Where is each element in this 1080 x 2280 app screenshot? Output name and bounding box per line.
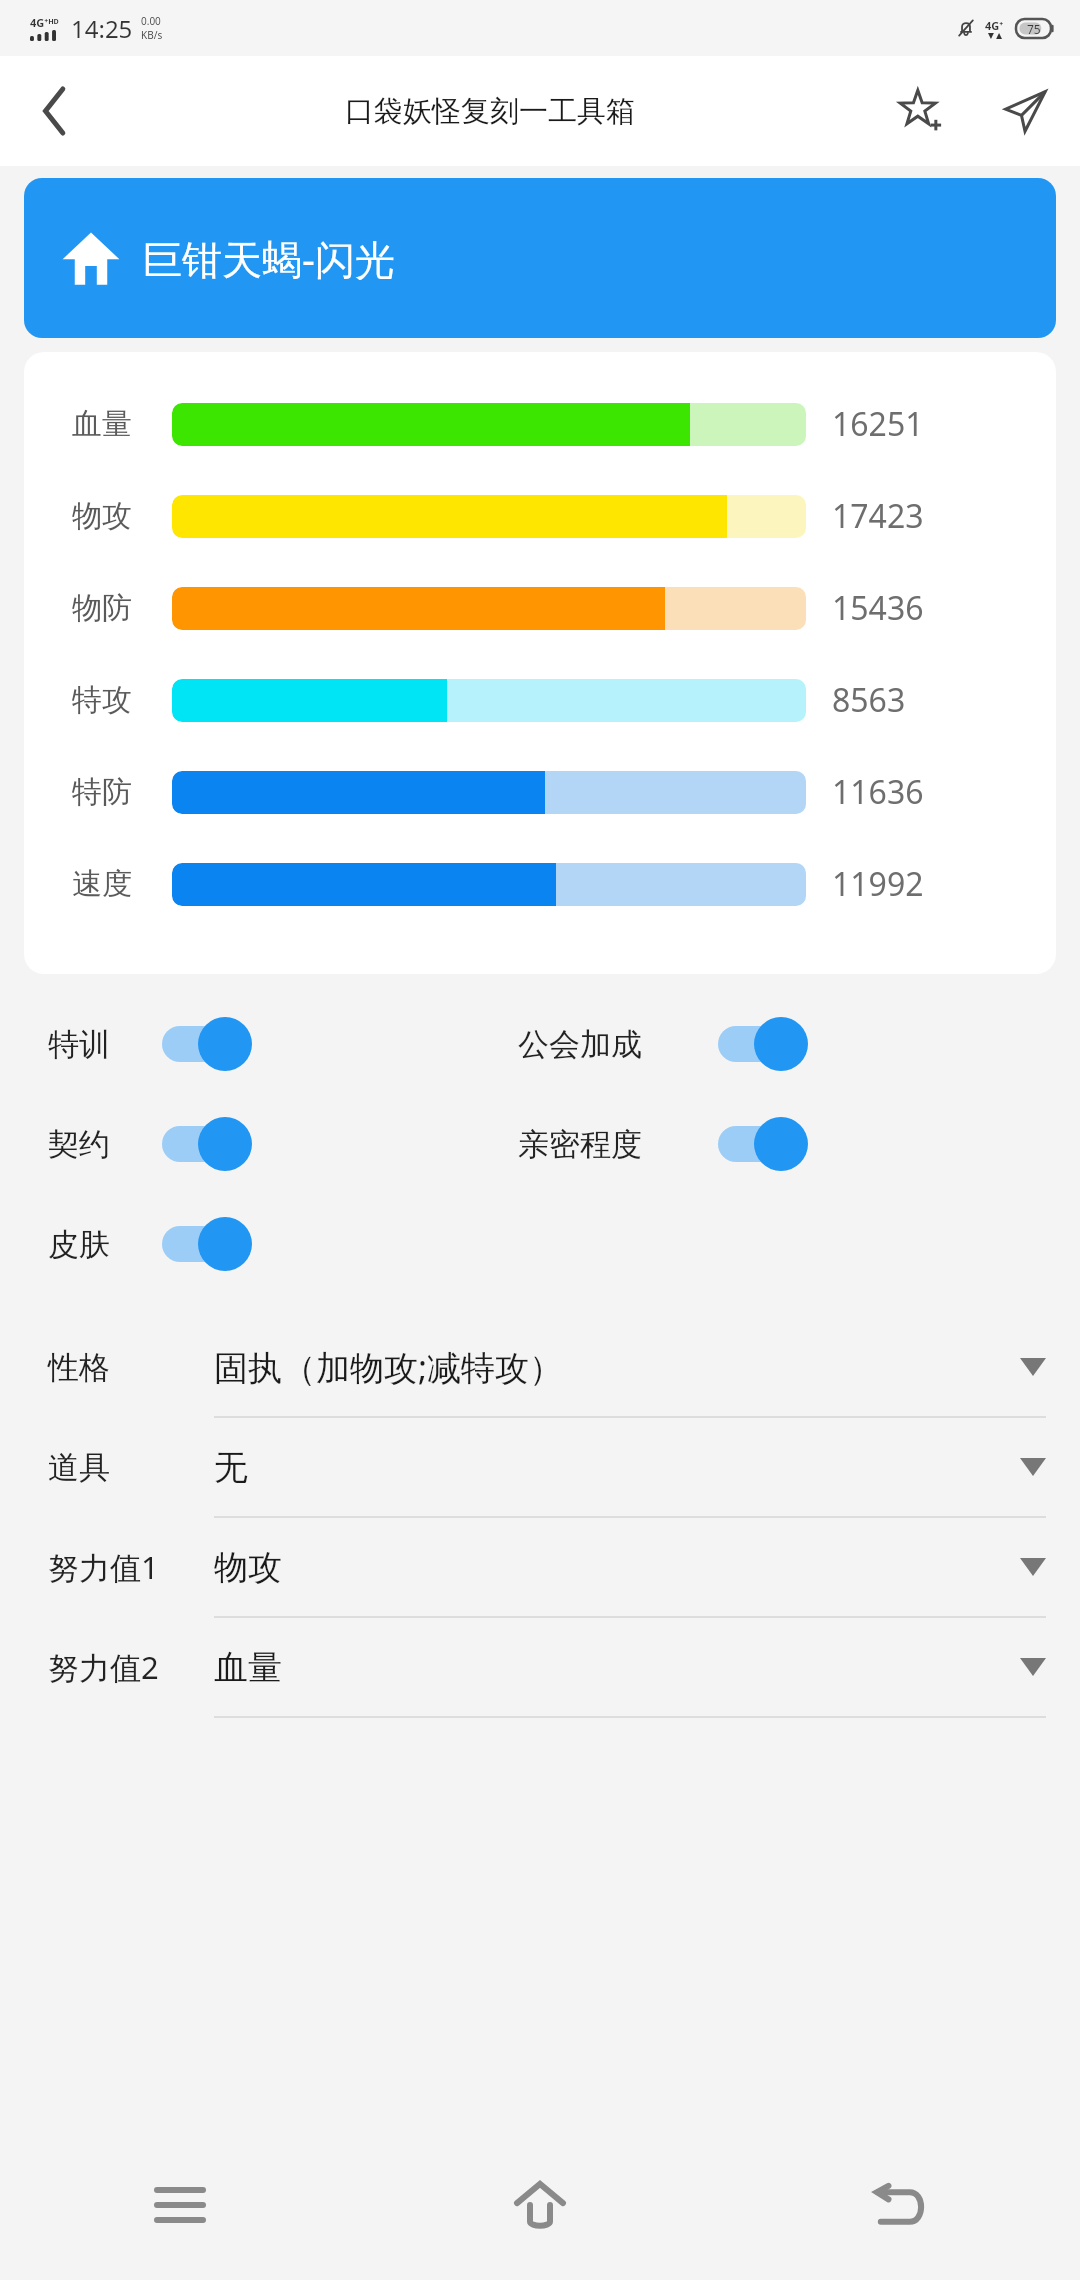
staticText: 75	[1027, 21, 1041, 37]
button[interactable]: 皮肤	[48, 1196, 254, 1292]
staticText: 特防	[72, 773, 132, 811]
staticText: 固执（加物攻;减特攻）	[214, 1344, 1020, 1390]
staticText: 特攻	[72, 681, 132, 719]
button[interactable]: 道具	[0, 1418, 1080, 1518]
staticText: 努力值1	[48, 1546, 159, 1588]
staticText: 特训	[48, 1025, 110, 1064]
button[interactable]: Add to favorites	[870, 56, 970, 166]
staticText: 15436	[832, 586, 924, 630]
button[interactable]: Recent apps	[115, 2140, 245, 2270]
staticText: 口袋妖怪复刻一工具箱	[345, 93, 635, 130]
staticText: 物攻	[72, 497, 132, 535]
staticText: 0.00	[141, 14, 161, 28]
staticText: 17423	[832, 494, 924, 538]
button[interactable]: 契约	[48, 1096, 254, 1192]
button[interactable]: 特训	[48, 996, 254, 1092]
button[interactable]: Share	[970, 56, 1080, 166]
staticText: 道具	[48, 1448, 110, 1487]
button[interactable]: 努力值2	[0, 1618, 1080, 1718]
staticText: 4G⁺	[985, 18, 1004, 33]
staticText: 契约	[48, 1125, 110, 1164]
button[interactable]: 性格	[0, 1318, 1080, 1418]
staticText: 无	[214, 1446, 1020, 1489]
staticText: 性格	[48, 1348, 110, 1387]
staticText: 努力值2	[48, 1646, 159, 1688]
button[interactable]: 巨钳天蝎-闪光	[24, 178, 1056, 338]
staticText: 皮肤	[48, 1225, 110, 1264]
staticText: 血量	[214, 1646, 1020, 1689]
staticText: 亲密程度	[518, 1125, 642, 1164]
button[interactable]: 公会加成	[518, 996, 810, 1092]
staticText: 4G⁺ᴴᴰ	[30, 15, 59, 30]
staticText: 16251	[832, 402, 924, 446]
staticText: 8563	[832, 678, 906, 722]
button[interactable]: Back	[835, 2140, 965, 2270]
button[interactable]: 亲密程度	[518, 1096, 810, 1192]
staticText: 巨钳天蝎-闪光	[142, 231, 395, 286]
staticText: 物攻	[214, 1546, 1020, 1589]
staticText: KB/s	[141, 28, 163, 42]
staticText: 14:25	[71, 12, 133, 45]
button[interactable]: Back	[0, 56, 110, 166]
staticText: 物防	[72, 589, 132, 627]
staticText: 11992	[832, 862, 924, 906]
staticText: 速度	[72, 865, 132, 903]
staticText: 11636	[832, 770, 924, 814]
button[interactable]: Home	[475, 2140, 605, 2270]
staticText: 公会加成	[518, 1025, 642, 1064]
staticText: 血量	[72, 405, 132, 443]
button[interactable]: 努力值1	[0, 1518, 1080, 1618]
